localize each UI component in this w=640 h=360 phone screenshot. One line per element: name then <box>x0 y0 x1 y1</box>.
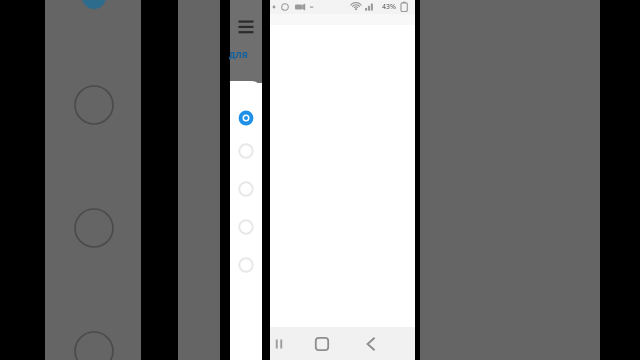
button[interactable]: Select item 3 <box>233 178 259 200</box>
button[interactable]: Back <box>358 331 384 357</box>
button[interactable]: Select item 5 <box>233 254 259 276</box>
staticText: для <box>229 47 248 61</box>
button[interactable]: Home <box>309 331 335 357</box>
button[interactable]: Select item 1 <box>233 107 259 129</box>
staticText: 43% <box>382 2 396 12</box>
button[interactable]: Select item 2 <box>233 140 259 162</box>
button[interactable]: Recent apps <box>267 332 291 356</box>
button[interactable]: Open navigation menu <box>233 12 259 38</box>
button[interactable]: Select item 4 <box>233 216 259 238</box>
